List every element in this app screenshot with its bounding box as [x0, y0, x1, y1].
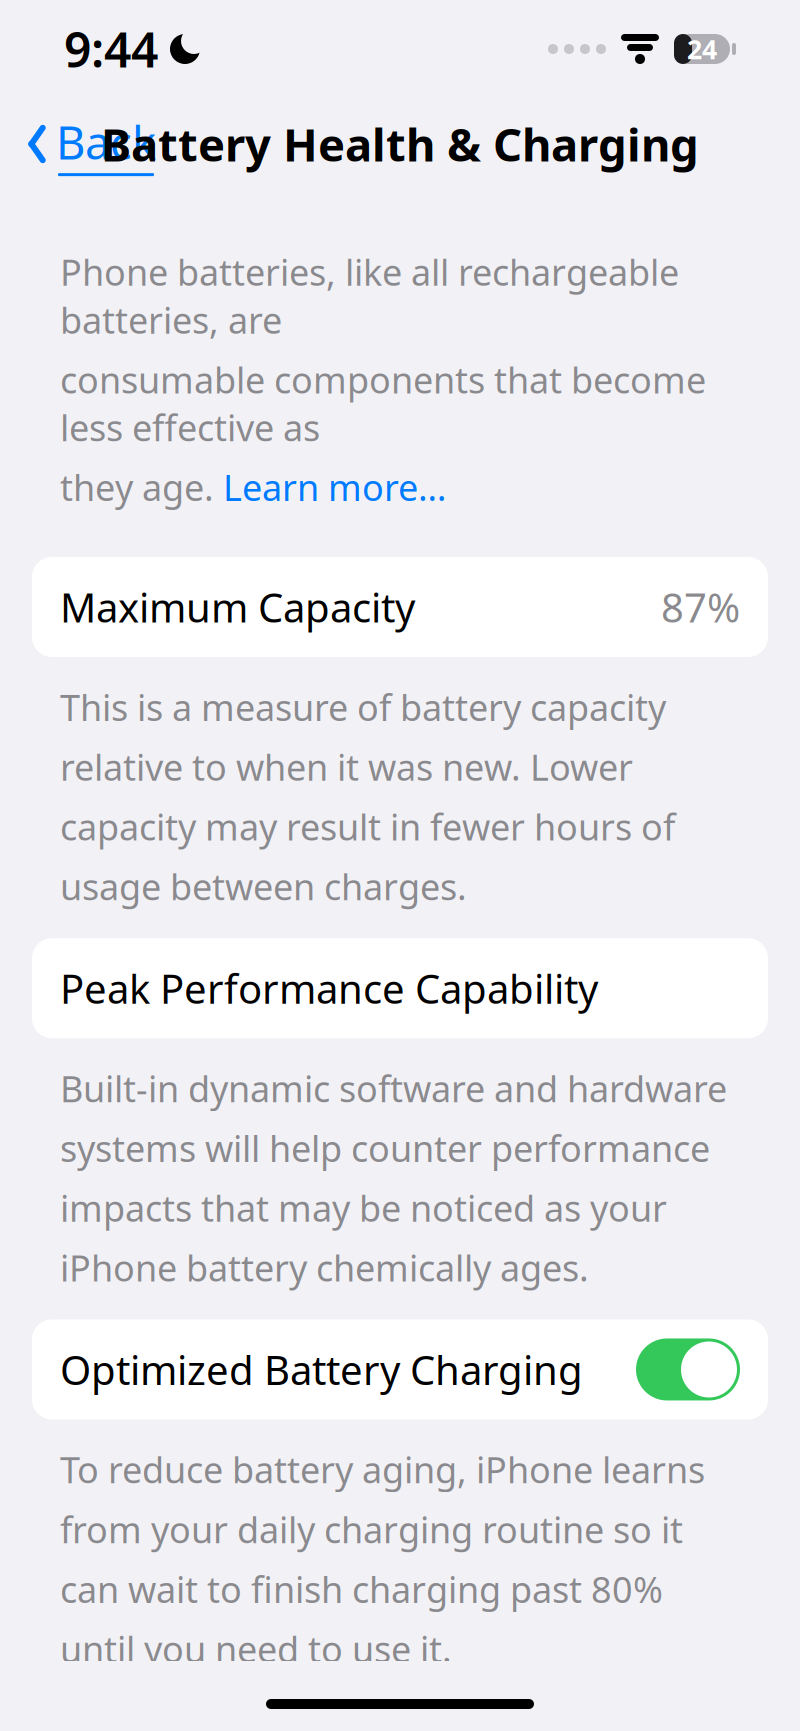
staticText: they age. [60, 463, 223, 511]
button[interactable]: Clean Energy Charging [32, 1701, 768, 1731]
staticText: To reduce battery aging, iPhone learns f… [60, 1445, 705, 1673]
staticText: Optimized Battery Charging [60, 1343, 583, 1396]
staticText: 87% [661, 580, 740, 634]
staticText: Back [56, 112, 156, 172]
staticText: Built-in dynamic software and hardware s… [60, 1064, 727, 1291]
staticText: Peak Performance Capability [60, 962, 598, 1015]
staticText: Maximum Capacity [60, 580, 415, 634]
staticText: Phone batteries, like all rechargeable b… [60, 248, 679, 344]
button[interactable]: Learn more… [223, 463, 446, 511]
staticText: 24 [687, 31, 717, 67]
staticText: This is a measure of battery capacity re… [60, 683, 675, 910]
staticText: consumable components that become less e… [60, 356, 706, 451]
staticText: Battery Health & Charging [101, 114, 699, 174]
button[interactable]: Optimized Battery Charging [32, 1319, 768, 1419]
button[interactable]: Back [10, 104, 172, 184]
staticText: 9:44 [64, 17, 158, 81]
staticText: Learn more… [223, 463, 446, 511]
